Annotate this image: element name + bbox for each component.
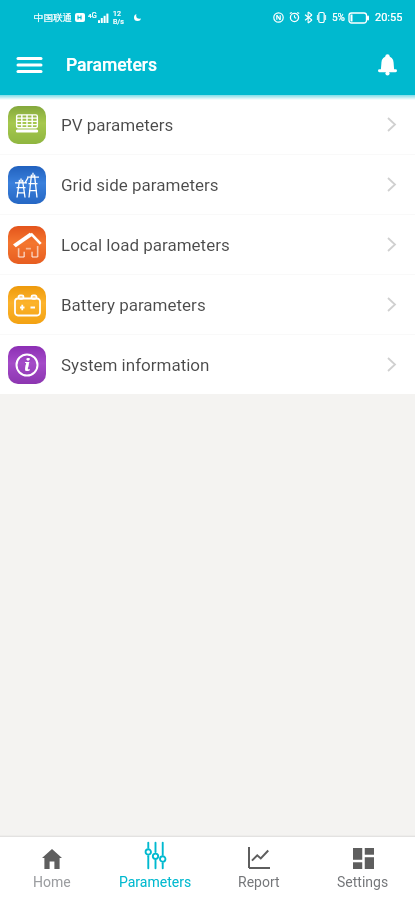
staticText: Battery parameters [61,295,206,315]
staticText: PV parameters [61,115,174,135]
staticText: System information [61,355,210,375]
staticText: Parameters [66,55,157,76]
button[interactable]: PV parameters [0,95,415,154]
button[interactable]: Home [0,837,103,900]
staticText: 中国联通 [34,12,72,24]
button[interactable]: Grid side parameters [0,155,415,214]
button[interactable]: Settings [311,837,415,900]
staticText: Report [238,874,280,890]
staticText: Local load parameters [61,235,230,255]
staticText: Home [33,874,71,890]
staticText: Parameters [119,874,192,890]
button[interactable]: Report [207,837,311,900]
staticText: 20:55 [375,11,403,24]
staticText: B/s [113,18,124,26]
button[interactable]: i [0,335,415,394]
staticText: Settings [337,874,389,890]
button[interactable] [0,36,58,94]
button[interactable]: Battery parameters [0,275,415,334]
button[interactable]: Parameters [103,837,207,900]
staticText: i [24,353,31,376]
staticText: 5% [332,12,345,24]
staticText: ⁴ᴳ [88,12,97,24]
staticText: 12 [113,10,121,18]
button[interactable] [359,37,415,93]
button[interactable]: Local load parameters [0,215,415,274]
staticText: Grid side parameters [61,175,219,195]
